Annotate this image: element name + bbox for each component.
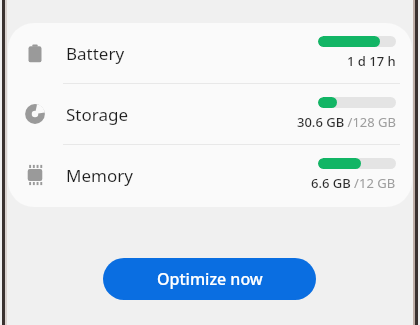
staticText: 30.6 GB /128 GB [297, 113, 396, 131]
staticText: 1 d 17 h [347, 52, 396, 70]
button[interactable]: Optimize now [103, 258, 316, 300]
button[interactable]: Storage [8, 84, 412, 144]
staticText: Memory [66, 164, 133, 187]
button[interactable]: Memory [8, 145, 412, 205]
staticText: 6.6 GB /12 GB [311, 174, 396, 192]
staticText: Battery [66, 42, 125, 65]
button[interactable]: Battery [8, 23, 412, 83]
staticText: Optimize now [157, 268, 263, 290]
staticText: Storage [66, 103, 129, 126]
